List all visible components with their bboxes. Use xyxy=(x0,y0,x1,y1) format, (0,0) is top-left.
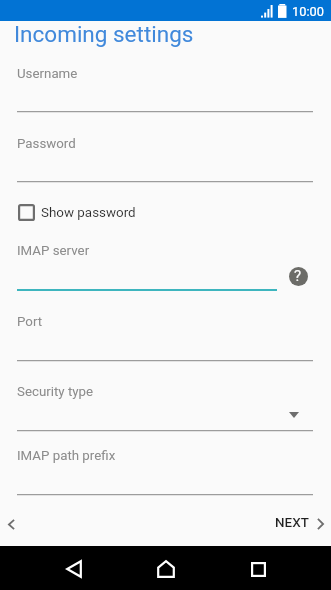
staticText: IMAP server xyxy=(17,243,90,259)
staticText: Incoming settings xyxy=(14,21,194,47)
staticText: ? xyxy=(294,267,302,285)
staticText: Security type xyxy=(17,384,94,400)
staticText: IMAP path prefix xyxy=(17,448,116,464)
button[interactable]: Previous step xyxy=(0,508,24,540)
staticText: Password xyxy=(17,136,76,152)
button[interactable]: NEXT xyxy=(268,508,328,540)
button[interactable]: Back xyxy=(56,551,92,587)
staticText: NEXT xyxy=(275,514,309,530)
staticText: Port xyxy=(17,314,43,330)
staticText: 10:00 xyxy=(292,4,324,19)
staticText: Username xyxy=(17,66,78,82)
button[interactable]: Help xyxy=(286,264,310,288)
button[interactable]: Recents xyxy=(240,551,276,587)
button[interactable]: Home xyxy=(148,551,184,587)
staticText: Show password xyxy=(41,205,136,221)
button[interactable]: Show password xyxy=(18,204,136,221)
